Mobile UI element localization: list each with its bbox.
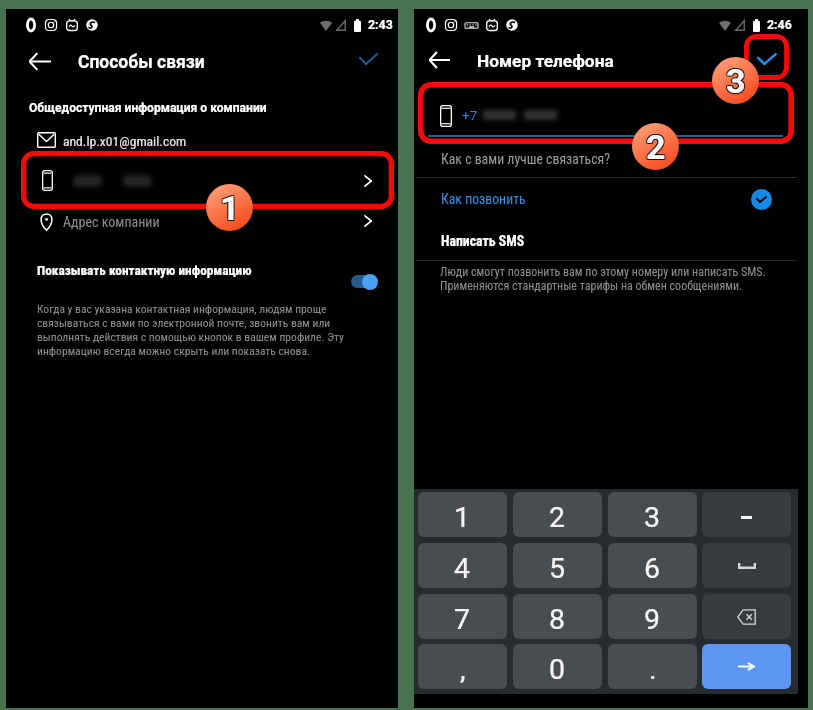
staticText: 2	[646, 127, 666, 167]
staticText: Как с вами лучше связаться?	[441, 151, 611, 167]
button[interactable]: 0	[513, 644, 602, 689]
button[interactable]: Back	[16, 37, 64, 85]
button[interactable]: +7	[414, 97, 808, 139]
button[interactable]: 7	[418, 594, 507, 639]
staticText: 2:43	[368, 17, 393, 32]
staticText: 1	[454, 501, 471, 534]
staticText: Люди смогут позвонить вам по этому номер…	[440, 265, 770, 293]
button[interactable]: Save	[344, 35, 392, 83]
staticText: 2	[549, 501, 566, 534]
staticText: 8	[549, 603, 566, 636]
staticText: 3	[727, 62, 747, 102]
button[interactable]: 8	[513, 594, 602, 639]
staticText: 2	[646, 128, 666, 168]
staticText: +7	[462, 107, 478, 123]
button[interactable]: 9	[608, 594, 697, 639]
staticText: ,	[460, 653, 466, 686]
staticText: 2	[646, 126, 666, 166]
staticText: 9	[644, 603, 661, 636]
staticText: Номер телефона	[477, 51, 614, 71]
staticText: 6	[644, 552, 661, 585]
button[interactable]: 3	[608, 492, 697, 537]
staticText: 5	[549, 552, 566, 585]
button[interactable]: Как позвонить	[414, 185, 808, 227]
button[interactable]: 5	[513, 543, 602, 588]
staticText: 2	[647, 128, 667, 168]
staticText: 2	[647, 127, 667, 167]
staticText: 1	[220, 187, 240, 227]
staticText: 1	[219, 188, 239, 228]
button[interactable]: 2	[513, 492, 602, 537]
button[interactable]: Go	[702, 644, 791, 689]
staticText: Как позвонить	[441, 191, 526, 207]
button[interactable]: .	[608, 644, 697, 689]
staticText: 2	[647, 126, 667, 166]
button[interactable]: Показывать контактную информацию	[6, 259, 398, 295]
staticText: 2	[645, 127, 665, 167]
staticText: 4	[454, 552, 471, 585]
staticText: Показывать контактную информацию	[37, 263, 252, 279]
staticText: 3	[725, 60, 745, 100]
staticText: 1	[219, 189, 239, 229]
staticText: 2	[645, 126, 665, 166]
staticText: 2	[645, 128, 665, 168]
staticText: and.lp.x01@gmail.com	[63, 133, 187, 149]
staticText: 0	[549, 653, 566, 686]
staticText: Способы связи	[78, 52, 205, 73]
button[interactable]: ,	[418, 644, 507, 689]
button[interactable]: Адрес компании	[6, 209, 398, 243]
staticText: 7	[454, 603, 471, 636]
staticText: Написать SMS	[441, 233, 525, 249]
button[interactable]: Backspace	[702, 594, 791, 639]
staticText: 1	[221, 189, 241, 229]
staticText: Когда у вас указана контактная информаци…	[37, 302, 352, 358]
staticText: 1	[219, 187, 239, 227]
staticText: 2:46	[767, 17, 792, 32]
staticText: 1	[220, 189, 240, 229]
staticText: 3	[726, 60, 746, 100]
button[interactable]: Dash	[702, 492, 791, 537]
staticText: Общедоступная информация о компании	[29, 101, 267, 115]
button[interactable]	[6, 161, 398, 209]
staticText: 1	[220, 188, 240, 228]
staticText: 3	[644, 501, 661, 534]
staticText: 3	[725, 62, 745, 102]
staticText: 3	[725, 61, 745, 101]
button[interactable]: Save	[743, 35, 791, 83]
staticText: 3	[727, 61, 747, 101]
button[interactable]: 4	[418, 543, 507, 588]
staticText: 3	[726, 61, 746, 101]
staticText: 3	[726, 62, 746, 102]
button[interactable]: Написать SMS	[414, 228, 808, 270]
staticText: 1	[221, 188, 241, 228]
button[interactable]: 1	[418, 492, 507, 537]
button[interactable]: 6	[608, 543, 697, 588]
staticText: .	[649, 653, 657, 686]
button[interactable]: and.lp.x01@gmail.com	[6, 127, 398, 157]
staticText: Адрес компании	[63, 214, 160, 230]
button[interactable]: Back	[415, 36, 463, 84]
button[interactable]: Space	[702, 543, 791, 588]
staticText: 1	[221, 187, 241, 227]
staticText: 3	[727, 60, 747, 100]
